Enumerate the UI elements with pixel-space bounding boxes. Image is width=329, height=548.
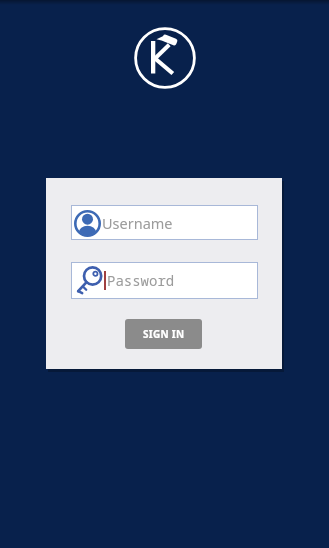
staticText: SIGN IN bbox=[143, 327, 185, 341]
button[interactable]: Username bbox=[71, 205, 258, 240]
button[interactable]: Password bbox=[71, 262, 258, 299]
button[interactable]: SIGN IN bbox=[125, 319, 202, 349]
staticText: Password bbox=[107, 271, 175, 290]
staticText: Username bbox=[102, 213, 173, 233]
